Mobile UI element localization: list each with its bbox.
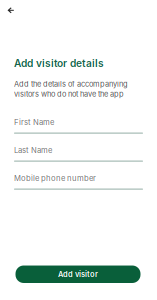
staticText: Last Name: [14, 145, 52, 155]
button[interactable]: Mobile phone number: [14, 174, 143, 190]
staticText: First Name: [14, 117, 54, 127]
button[interactable]: Back: [0, 0, 22, 21]
button[interactable]: Last Name: [14, 146, 143, 162]
button[interactable]: First Name: [14, 118, 143, 134]
staticText: Add the details of accompanying visitors…: [14, 80, 128, 99]
button[interactable]: Add visitor: [15, 265, 140, 283]
staticText: Add visitor: [58, 270, 98, 279]
staticText: Mobile phone number: [14, 173, 96, 183]
staticText: Add visitor details: [14, 57, 104, 70]
